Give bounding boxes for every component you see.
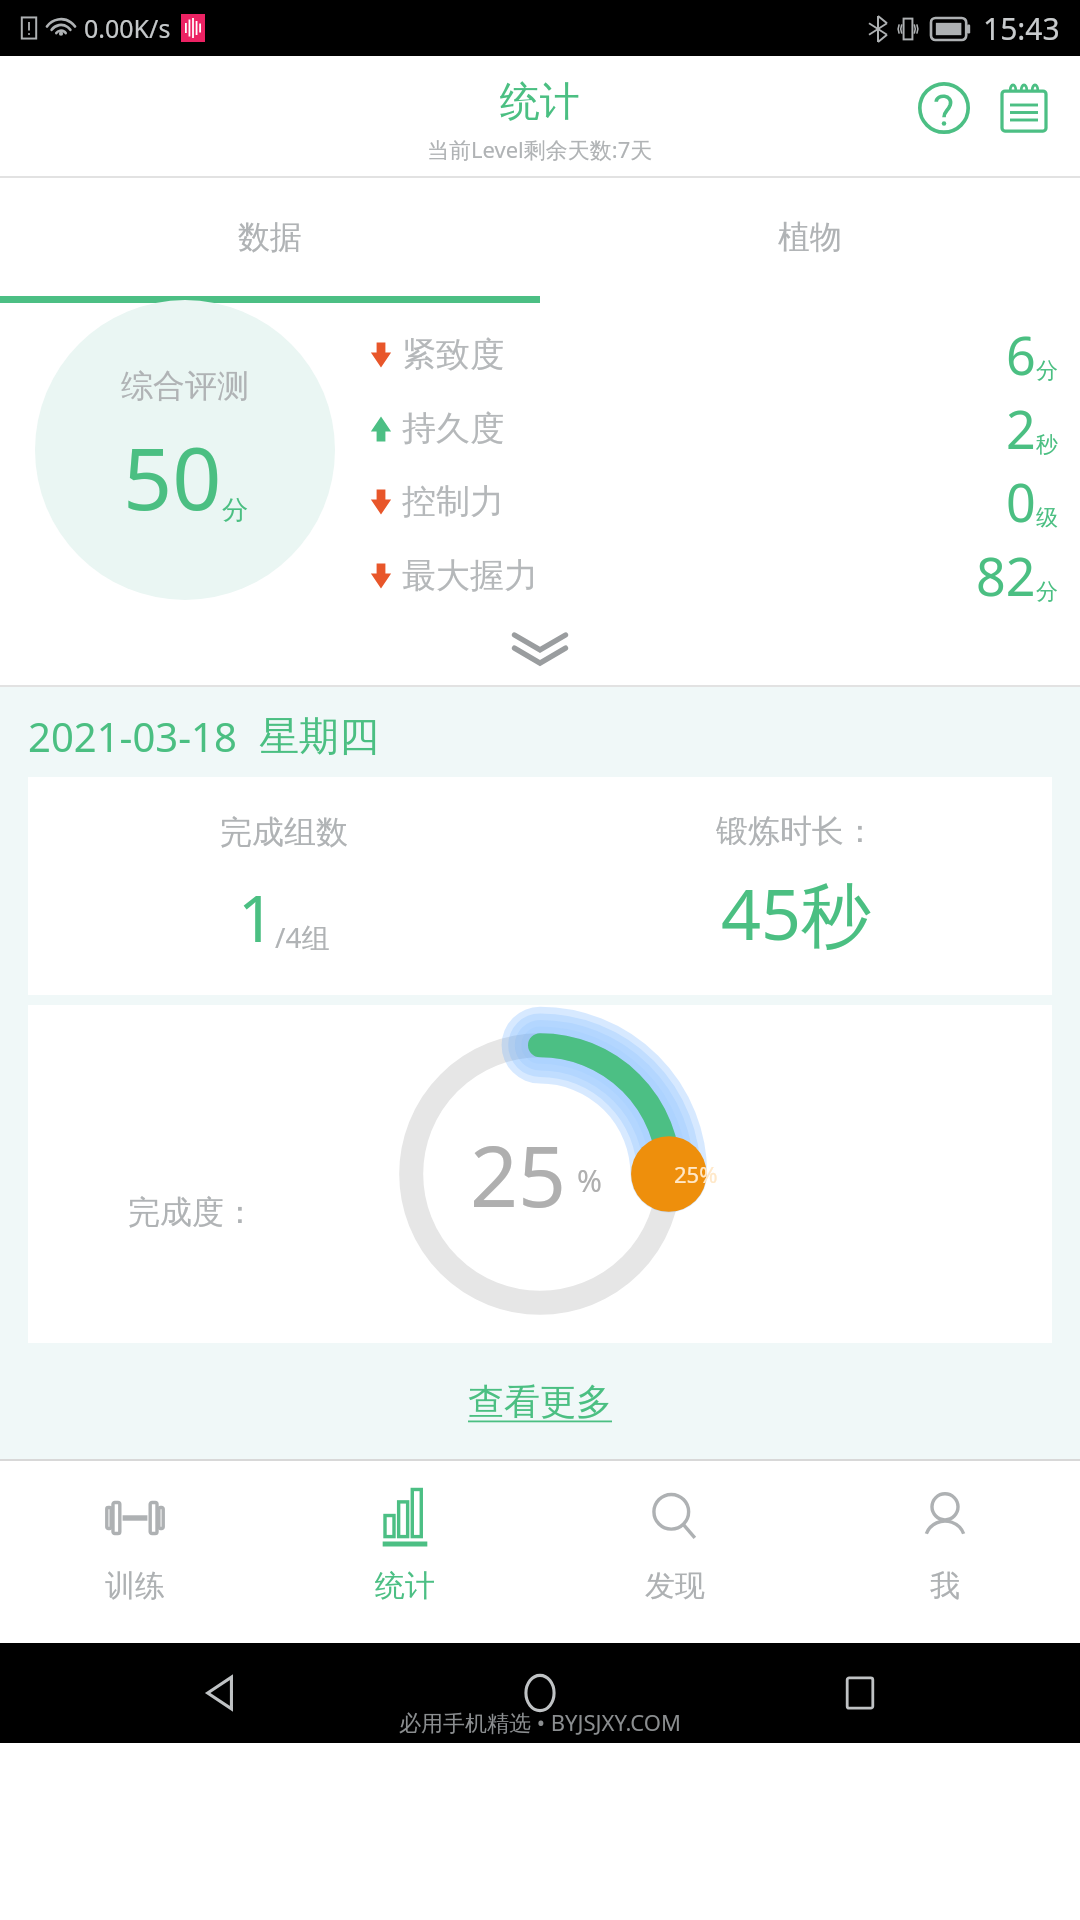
button[interactable]: 植物	[540, 178, 1080, 296]
staticText: 2	[1006, 393, 1036, 464]
button[interactable]: 统计	[270, 1461, 540, 1643]
staticText: 数据	[238, 217, 302, 257]
staticText: 2021-03-18	[28, 709, 237, 763]
staticText: 发现	[645, 1567, 705, 1605]
button[interactable]: 完成组数	[28, 777, 1052, 995]
button[interactable]: Expand	[0, 613, 1080, 685]
staticText: 级	[1036, 504, 1058, 532]
staticText: 查看更多	[468, 1379, 612, 1424]
button[interactable]: 发现	[540, 1461, 810, 1643]
staticText: 植物	[778, 217, 842, 257]
staticText: 综合评测	[121, 366, 249, 406]
staticText: 最大握力	[402, 554, 538, 597]
staticText: 25%	[674, 1159, 718, 1189]
button[interactable]: 我	[810, 1461, 1080, 1643]
staticText: 45秒	[721, 865, 872, 961]
staticText: 15:43	[983, 8, 1060, 49]
staticText: 分	[1036, 578, 1058, 606]
staticText: 锻炼时长：	[716, 811, 876, 851]
button[interactable]: Help	[912, 76, 976, 140]
staticText: 完成组数	[220, 812, 348, 852]
staticText: 82	[976, 540, 1036, 611]
staticText: %	[577, 1160, 602, 1201]
staticText: 1	[238, 874, 275, 961]
staticText: 训练	[105, 1567, 165, 1605]
staticText: 完成度：	[128, 1192, 256, 1232]
staticText: 50	[123, 418, 222, 535]
staticText: 25	[470, 1117, 567, 1231]
staticText: 0.00K/s	[84, 11, 171, 45]
staticText: /4组	[275, 918, 330, 956]
staticText: 分	[222, 494, 248, 527]
staticText: 统计	[500, 76, 580, 126]
button[interactable]: 完成度：	[28, 1005, 1052, 1343]
staticText: 分	[1036, 357, 1058, 385]
staticText: 必用手机精选 • BYJSJXY.COM	[399, 1707, 681, 1737]
staticText: 0	[1006, 466, 1036, 537]
staticText: 我	[930, 1567, 960, 1605]
button[interactable]: 查看更多	[452, 1371, 628, 1432]
staticText: 统计	[375, 1567, 435, 1605]
staticText: 持久度	[402, 407, 504, 450]
staticText: 星期四	[259, 711, 379, 761]
staticText: 当前Level剩余天数:7天	[427, 134, 653, 164]
button[interactable]: 训练	[0, 1461, 270, 1643]
staticText: 秒	[1036, 431, 1058, 459]
button[interactable]: Recents	[700, 1673, 1020, 1713]
button[interactable]: Home	[380, 1671, 700, 1715]
button[interactable]: Notes	[992, 76, 1056, 140]
staticText: 控制力	[402, 480, 504, 523]
button[interactable]: 数据	[0, 178, 540, 296]
staticText: 6	[1006, 319, 1036, 390]
staticText: 紧致度	[402, 333, 504, 376]
button[interactable]: Back	[60, 1671, 380, 1715]
